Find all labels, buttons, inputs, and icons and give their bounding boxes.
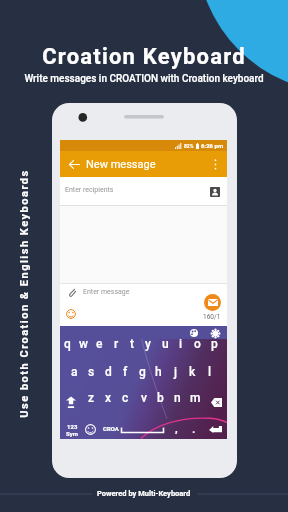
button[interactable]: Space bbox=[120, 425, 166, 436]
button[interactable]: w bbox=[75, 333, 91, 355]
button[interactable]: o bbox=[189, 333, 205, 355]
button[interactable]: z bbox=[83, 387, 100, 409]
staticText: Sym bbox=[66, 430, 78, 437]
button[interactable]: x bbox=[100, 387, 117, 409]
staticText: j bbox=[174, 365, 178, 379]
button[interactable]: s bbox=[83, 361, 100, 383]
button[interactable]: h bbox=[150, 361, 167, 383]
staticText: Write messages in CROATION with Croation… bbox=[24, 73, 264, 85]
button[interactable]: k bbox=[184, 361, 201, 383]
staticText: w bbox=[79, 337, 88, 351]
staticText: n bbox=[174, 391, 181, 405]
staticText: d bbox=[105, 365, 112, 379]
button[interactable]: y bbox=[140, 333, 156, 355]
button[interactable]: Theme bbox=[188, 327, 200, 339]
staticText: r bbox=[114, 337, 119, 351]
staticText: Enter recipients bbox=[65, 186, 114, 194]
button[interactable]: Emoji bbox=[84, 423, 96, 435]
staticText: 6:26 pm bbox=[201, 142, 224, 149]
button[interactable]: e bbox=[91, 333, 107, 355]
staticText: c bbox=[122, 391, 129, 405]
staticText: g bbox=[139, 365, 146, 379]
staticText: k bbox=[189, 365, 196, 379]
button[interactable]: More options bbox=[206, 155, 224, 173]
button[interactable]: d bbox=[100, 361, 117, 383]
staticText: p bbox=[211, 337, 218, 351]
staticText: e bbox=[96, 337, 103, 351]
staticText: o bbox=[194, 337, 201, 351]
button[interactable]: CROA bbox=[102, 424, 120, 433]
button[interactable]: p bbox=[206, 333, 222, 355]
button[interactable]: i bbox=[173, 333, 189, 355]
staticText: b bbox=[157, 391, 164, 405]
staticText: y bbox=[145, 337, 151, 351]
button[interactable]: , bbox=[170, 422, 182, 434]
staticText: i bbox=[179, 337, 183, 351]
staticText: f bbox=[123, 365, 128, 379]
staticText: , bbox=[175, 422, 178, 434]
staticText: Croation Keyboard bbox=[42, 44, 246, 70]
staticText: Enter message bbox=[83, 288, 130, 296]
staticText: x bbox=[105, 391, 112, 405]
button[interactable]: l bbox=[201, 361, 218, 383]
button[interactable]: j bbox=[167, 361, 184, 383]
staticText: 82% bbox=[184, 143, 194, 149]
button[interactable]: v bbox=[135, 387, 152, 409]
button[interactable]: b bbox=[152, 387, 169, 409]
staticText: . bbox=[192, 422, 196, 434]
staticText: CROA bbox=[103, 425, 119, 432]
button[interactable]: Enter recipients bbox=[60, 177, 227, 206]
staticText: 160/1 bbox=[203, 313, 221, 321]
staticText: s bbox=[88, 365, 95, 379]
button[interactable]: a bbox=[66, 361, 83, 383]
staticText: z bbox=[88, 391, 95, 405]
button[interactable]: Enter bbox=[207, 421, 224, 438]
staticText: t bbox=[130, 337, 134, 351]
button[interactable]: q bbox=[59, 333, 75, 355]
staticText: q bbox=[64, 337, 71, 351]
button[interactable]: t bbox=[124, 333, 140, 355]
button[interactable]: Send message bbox=[204, 294, 221, 311]
button[interactable]: . bbox=[188, 422, 200, 434]
button[interactable]: c bbox=[117, 387, 134, 409]
button[interactable]: g bbox=[134, 361, 151, 383]
staticText: a bbox=[71, 365, 78, 379]
staticText: u bbox=[162, 337, 169, 351]
staticText: Powered by Multi-Keyboard bbox=[97, 489, 191, 498]
staticText: m bbox=[190, 391, 201, 405]
button[interactable]: Symbols bbox=[64, 421, 79, 438]
button[interactable]: r bbox=[108, 333, 124, 355]
button[interactable]: m bbox=[187, 387, 204, 409]
staticText: New message bbox=[86, 158, 156, 171]
staticText: l bbox=[208, 365, 212, 379]
staticText: h bbox=[155, 365, 162, 379]
button[interactable]: Settings bbox=[209, 327, 221, 339]
button[interactable]: n bbox=[169, 387, 186, 409]
staticText: 123 bbox=[67, 423, 78, 430]
button[interactable]: Backspace bbox=[208, 394, 224, 410]
staticText: Use both Croation & English Keyboards bbox=[18, 169, 31, 418]
button[interactable]: u bbox=[157, 333, 173, 355]
button[interactable]: Shift bbox=[63, 394, 79, 410]
staticText: v bbox=[141, 391, 147, 405]
button[interactable]: Back bbox=[65, 155, 83, 173]
button[interactable]: f bbox=[117, 361, 134, 383]
